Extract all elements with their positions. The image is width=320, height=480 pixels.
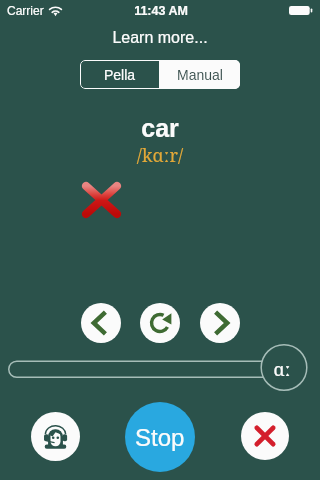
button[interactable]: Close (241, 412, 289, 460)
staticText: /kɑːr/ (0, 143, 320, 168)
staticText: Pella (104, 67, 136, 83)
button[interactable]: Next (200, 303, 240, 343)
staticText: Manual (177, 67, 223, 83)
staticText: car (0, 114, 320, 142)
button[interactable]: Pella (80, 60, 159, 89)
button[interactable]: Stop (125, 402, 195, 472)
button[interactable]: Manual (159, 60, 240, 89)
staticText: 11:43 AM (1, 4, 320, 18)
button[interactable]: Replay (140, 303, 180, 343)
staticText: Carrier (7, 4, 44, 17)
staticText: Learn more... (0, 29, 320, 47)
button[interactable]: Listen (31, 412, 80, 461)
staticText: Stop (135, 424, 185, 451)
staticText: ɑː (262, 357, 302, 382)
button[interactable]: Previous (81, 303, 121, 343)
